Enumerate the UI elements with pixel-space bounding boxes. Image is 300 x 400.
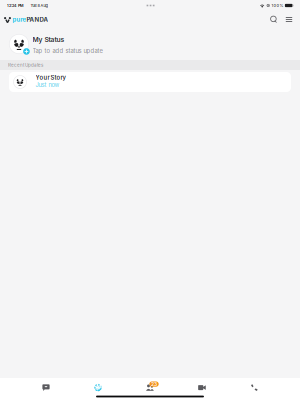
staticText: pure	[12, 16, 26, 23]
button[interactable]: Communities	[135, 380, 165, 396]
staticText: Tue 8 Aug	[30, 3, 47, 8]
staticText: Recent Updates	[8, 62, 43, 68]
staticText: PANDA	[26, 16, 48, 23]
staticText: My Status	[32, 36, 64, 44]
staticText: Your Story	[35, 74, 65, 81]
button[interactable]: Camera	[187, 380, 217, 396]
staticText: 12:24 PM	[7, 3, 24, 8]
staticText: 100%	[272, 3, 284, 8]
button[interactable]: Menu	[281, 12, 296, 27]
button[interactable]: Search	[266, 12, 281, 27]
button[interactable]: My Status	[0, 28, 300, 60]
button[interactable]: Chats	[31, 380, 61, 396]
staticText: 23	[151, 381, 157, 387]
staticText: Just now	[35, 81, 59, 88]
button[interactable]: Status	[83, 380, 113, 396]
button[interactable]: Your Story	[9, 72, 291, 92]
staticText: Tap to add status update	[32, 47, 102, 54]
button[interactable]: Calls	[239, 380, 269, 396]
